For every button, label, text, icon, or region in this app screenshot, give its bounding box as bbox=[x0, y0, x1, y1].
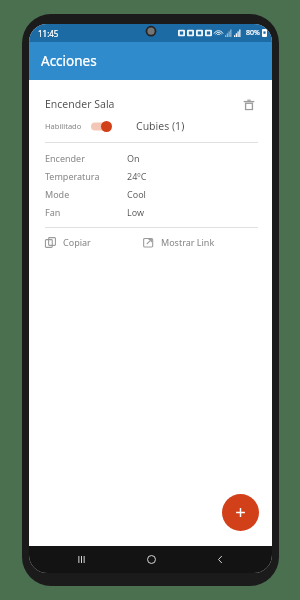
button[interactable]: Recientes bbox=[64, 546, 98, 573]
staticText: Temperatura bbox=[45, 170, 127, 182]
button[interactable]: Mostrar Link bbox=[143, 231, 258, 253]
button[interactable]: Encender Sala bbox=[32, 87, 269, 260]
button[interactable]: Eliminar bbox=[240, 96, 258, 114]
staticText: Mode bbox=[45, 188, 127, 200]
staticText: 80% bbox=[246, 28, 260, 38]
button[interactable]: Atrás bbox=[203, 546, 237, 573]
button[interactable]: Inicio bbox=[134, 546, 168, 573]
button[interactable]: Habilitado bbox=[91, 121, 116, 132]
staticText: Encender bbox=[45, 152, 127, 164]
staticText: Habilitado bbox=[45, 121, 82, 131]
staticText: Fan bbox=[45, 206, 127, 218]
staticText: Encender Sala bbox=[45, 97, 240, 111]
staticText: Copiar bbox=[63, 236, 91, 248]
staticText: On bbox=[127, 152, 140, 164]
staticText: Acciones bbox=[41, 52, 97, 70]
staticText: Mostrar Link bbox=[161, 236, 215, 248]
button[interactable]: Agregar acción bbox=[222, 494, 259, 531]
button[interactable]: Copiar bbox=[45, 231, 143, 253]
staticText: Cubies (1) bbox=[136, 119, 185, 133]
staticText: 24ºC bbox=[127, 170, 147, 182]
staticText: Low bbox=[127, 206, 145, 218]
staticText: Cool bbox=[127, 188, 146, 200]
staticText: 11:45 bbox=[38, 28, 59, 39]
